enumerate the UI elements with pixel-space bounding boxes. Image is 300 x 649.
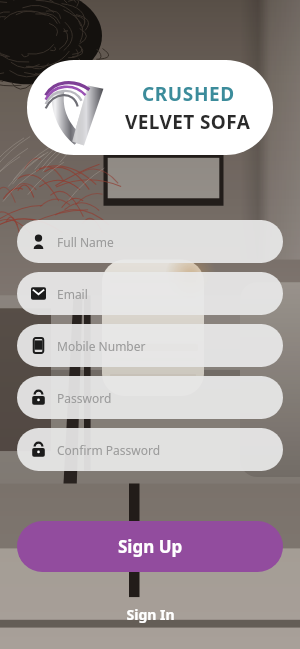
staticText: Full Name [57,234,114,250]
button[interactable]: Sign Up [17,521,283,572]
button[interactable]: Sign In [108,600,193,629]
staticText: Sign Up [118,535,183,558]
button[interactable]: Mobile Number [17,324,283,367]
button[interactable]: Full Name [17,220,283,263]
button[interactable]: Password [17,376,283,419]
button[interactable]: Confirm Password [17,428,283,471]
staticText: Sign In [126,605,175,624]
staticText: VELVET SOFA [125,109,251,135]
staticText: Confirm Password [57,442,161,458]
staticText: Password [57,390,112,406]
staticText: CRUSHED [142,81,235,107]
staticText: Mobile Number [57,338,146,354]
staticText: Email [57,286,88,302]
button[interactable]: Email [17,272,283,315]
